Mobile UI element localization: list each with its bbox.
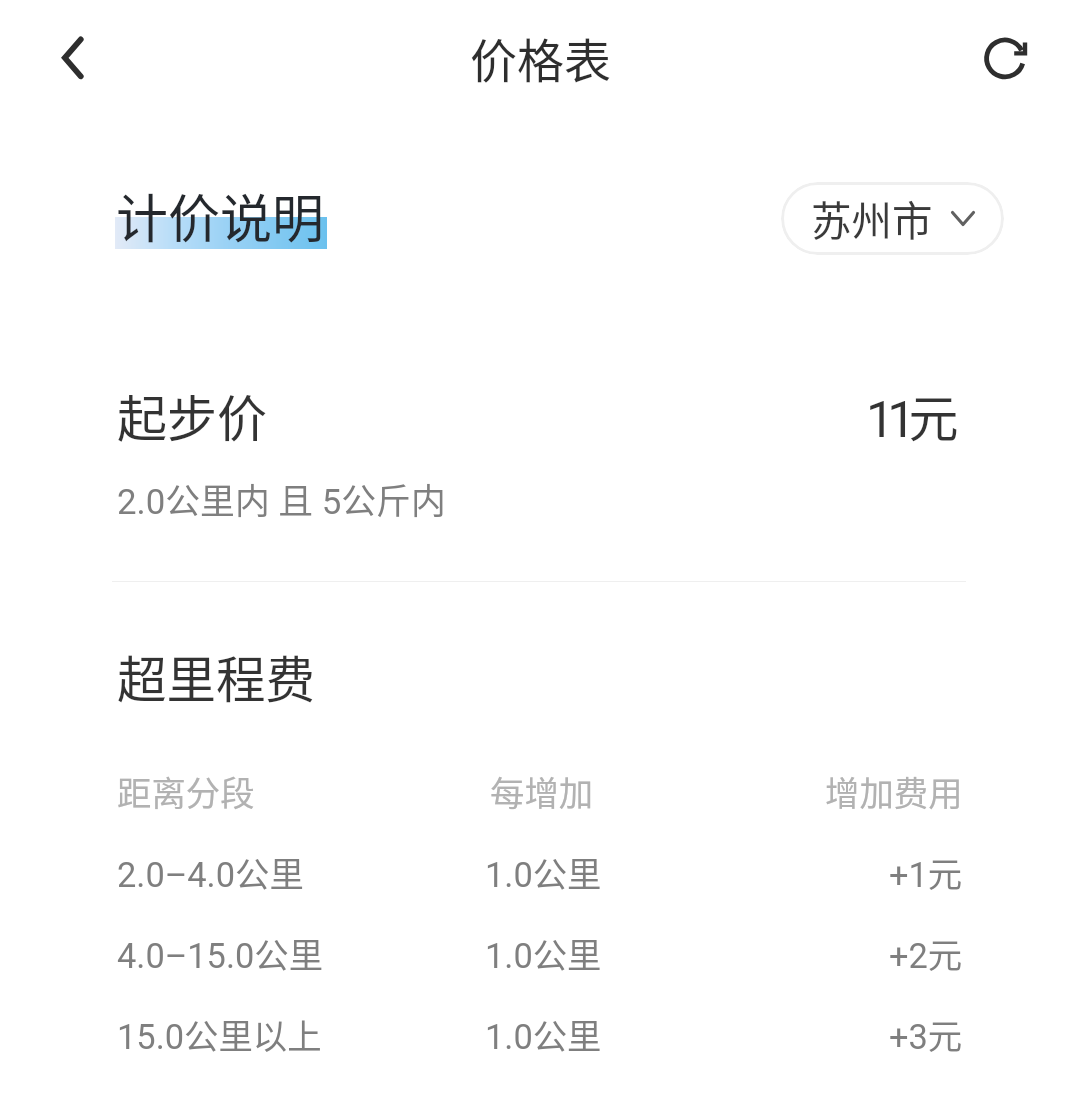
staticText: 距离分段 <box>117 766 255 816</box>
button[interactable]: 苏州市 <box>781 182 1004 255</box>
button[interactable]: Refresh <box>968 21 1040 93</box>
staticText: 计价说明 <box>116 178 325 253</box>
button[interactable]: Back <box>27 21 99 93</box>
staticText: +1元 <box>889 847 963 897</box>
staticText: 11元 <box>866 379 952 451</box>
staticText: 15.0公里以上 <box>117 1009 322 1059</box>
staticText: 每增加 <box>490 766 594 816</box>
staticText: 起步价 <box>117 379 267 451</box>
staticText: +2元 <box>889 928 963 978</box>
staticText: 2.0–4.0公里 <box>117 847 304 897</box>
staticText: 1.0公里 <box>485 928 602 978</box>
staticText: 1.0公里 <box>485 1009 602 1059</box>
staticText: 增加费用 <box>825 766 963 816</box>
staticText: 价格表 <box>470 23 611 91</box>
staticText: +3元 <box>889 1009 963 1059</box>
staticText: 超里程费 <box>117 641 315 713</box>
staticText: 2.0公里内 且 5公斤内 <box>117 474 446 524</box>
staticText: 4.0–15.0公里 <box>117 928 324 978</box>
staticText: 1.0公里 <box>485 847 602 897</box>
staticText: 苏州市 <box>811 189 933 248</box>
